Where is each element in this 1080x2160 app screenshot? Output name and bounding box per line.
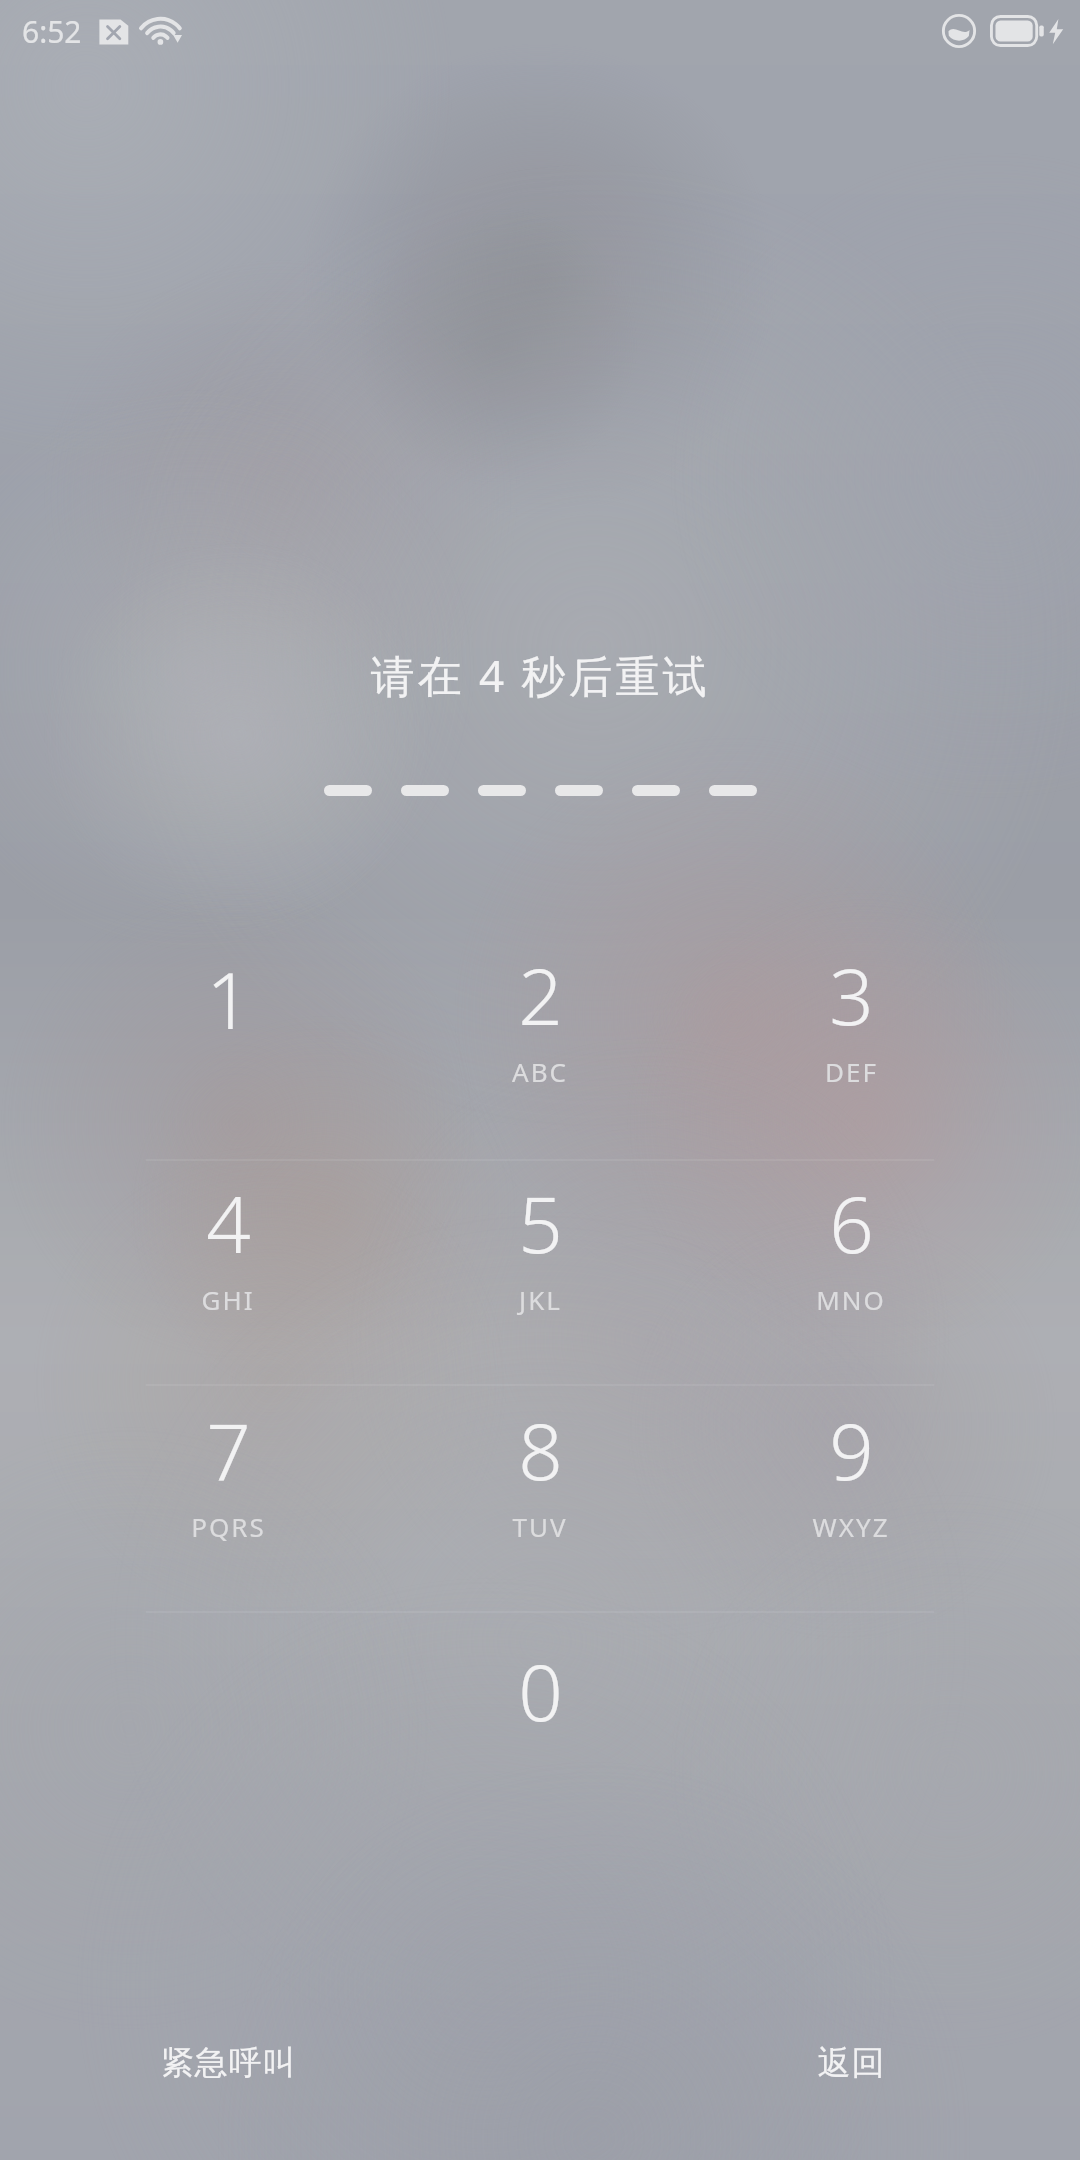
button[interactable]: 5	[390, 1143, 690, 1343]
staticText: TUV	[512, 1509, 568, 1544]
staticText: 6:52	[22, 11, 82, 52]
staticText: 6	[829, 1170, 874, 1276]
staticText: 4	[206, 1170, 251, 1276]
staticText: 5	[518, 1170, 563, 1276]
button[interactable]: 9	[701, 1370, 1001, 1570]
button[interactable]: 紧急呼叫	[120, 2020, 336, 2106]
staticText: 3	[829, 942, 874, 1048]
staticText: 返回	[817, 2042, 885, 2084]
staticText: 9	[829, 1397, 874, 1503]
button[interactable]: 1	[78, 915, 378, 1115]
staticText: 0	[518, 1638, 563, 1744]
button[interactable]: 7	[78, 1370, 378, 1570]
button[interactable]: 4	[78, 1143, 378, 1343]
staticText: 请在 4 秒后重试	[370, 645, 710, 705]
button[interactable]: 2	[390, 915, 690, 1115]
staticText: DEF	[825, 1054, 878, 1089]
staticText: 2	[518, 942, 563, 1048]
staticText: PQRS	[191, 1509, 266, 1544]
staticText: GHI	[201, 1282, 255, 1317]
button[interactable]: 6	[701, 1143, 1001, 1343]
button[interactable]: 3	[701, 915, 1001, 1115]
button[interactable]: 8	[390, 1370, 690, 1570]
staticText: ABC	[512, 1054, 568, 1089]
staticText: 1	[206, 946, 251, 1052]
staticText: WXYZ	[812, 1509, 890, 1544]
staticText: 8	[518, 1397, 563, 1503]
staticText: 紧急呼叫	[160, 2042, 296, 2084]
button[interactable]: 0	[390, 1607, 690, 1807]
staticText: JKL	[519, 1282, 562, 1317]
button[interactable]: 返回	[777, 2020, 925, 2106]
staticText: 7	[206, 1397, 251, 1503]
staticText: MNO	[816, 1282, 886, 1317]
